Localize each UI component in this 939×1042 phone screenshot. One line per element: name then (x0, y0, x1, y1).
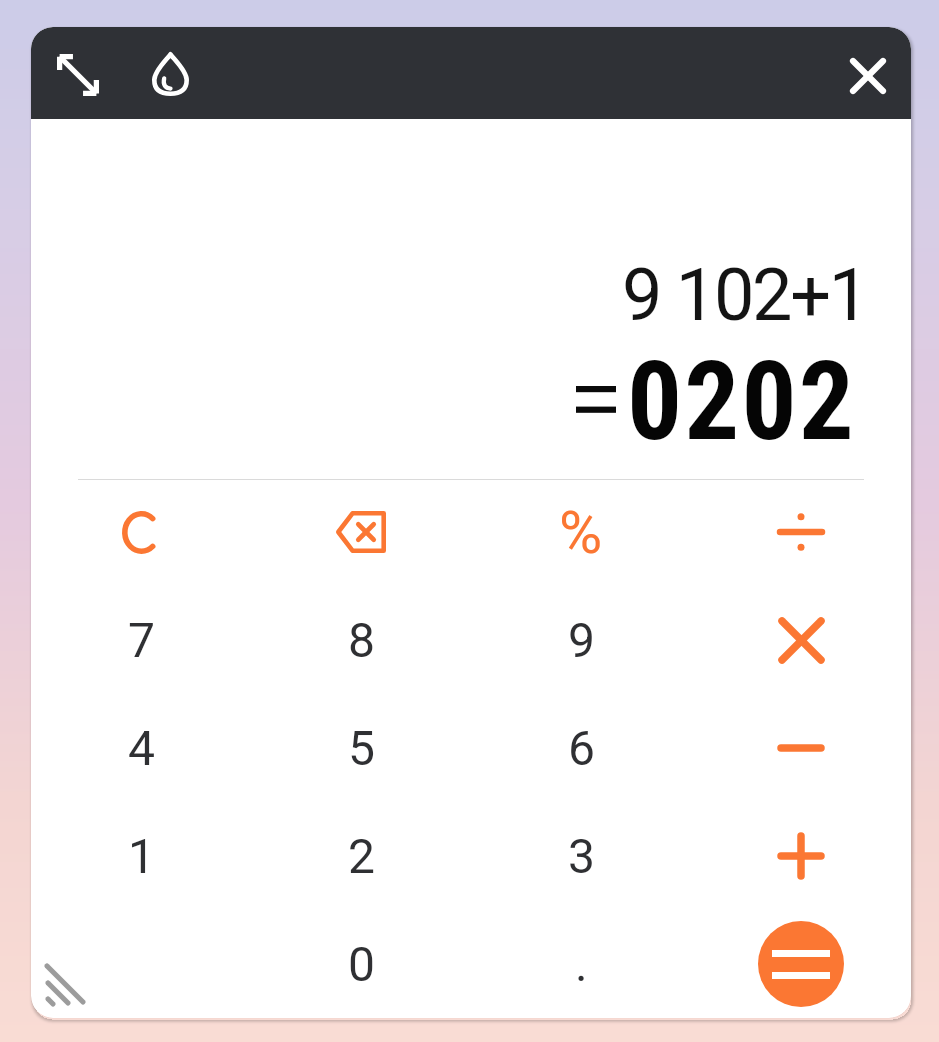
button[interactable]: . (471, 910, 691, 1018)
button[interactable]: Close (839, 47, 897, 105)
other: Backspace (336, 511, 386, 553)
button[interactable]: Expand window (48, 45, 107, 104)
staticText: 9 (568, 612, 595, 668)
button[interactable]: Divide (691, 478, 911, 586)
staticText: 0202 (627, 338, 857, 466)
other: Subtract (778, 743, 824, 753)
button[interactable]: 6 (471, 694, 691, 802)
button[interactable]: 9 (471, 586, 691, 694)
staticText: 2 (348, 828, 375, 884)
staticText: % (559, 498, 603, 567)
staticText: 7 (128, 612, 155, 668)
staticText: 9 102+1 (622, 253, 867, 337)
staticText: 5 (348, 720, 375, 776)
staticText: 3 (568, 828, 595, 884)
button[interactable]: Multiply (691, 586, 911, 694)
other: Multiply (782, 621, 821, 660)
other: Add (778, 833, 824, 879)
other: Clear (122, 511, 161, 554)
staticText: 4 (128, 720, 155, 776)
button[interactable]: Equals (691, 910, 911, 1018)
staticText: . (575, 936, 588, 992)
button[interactable]: 7 (31, 586, 251, 694)
button[interactable] (31, 910, 251, 1018)
button[interactable]: Subtract (691, 694, 911, 802)
button[interactable]: 8 (251, 586, 471, 694)
other: Divide (780, 515, 822, 549)
other: Equals (758, 921, 844, 1007)
other: Resize handle (44, 963, 86, 1005)
button[interactable]: Add (691, 802, 911, 910)
staticText: 0 (348, 936, 375, 992)
button[interactable]: 4 (31, 694, 251, 802)
button[interactable]: Clear (31, 478, 251, 586)
button[interactable]: Theme (141, 45, 199, 103)
staticText: 6 (568, 720, 595, 776)
button[interactable]: 3 (471, 802, 691, 910)
staticText: 1 (128, 828, 155, 884)
button[interactable]: % (471, 478, 691, 586)
button[interactable]: 1 (31, 802, 251, 910)
button[interactable]: 0 (251, 910, 471, 1018)
button[interactable]: 5 (251, 694, 471, 802)
button[interactable]: 2 (251, 802, 471, 910)
staticText: 8 (348, 612, 375, 668)
button[interactable]: Backspace (251, 478, 471, 586)
